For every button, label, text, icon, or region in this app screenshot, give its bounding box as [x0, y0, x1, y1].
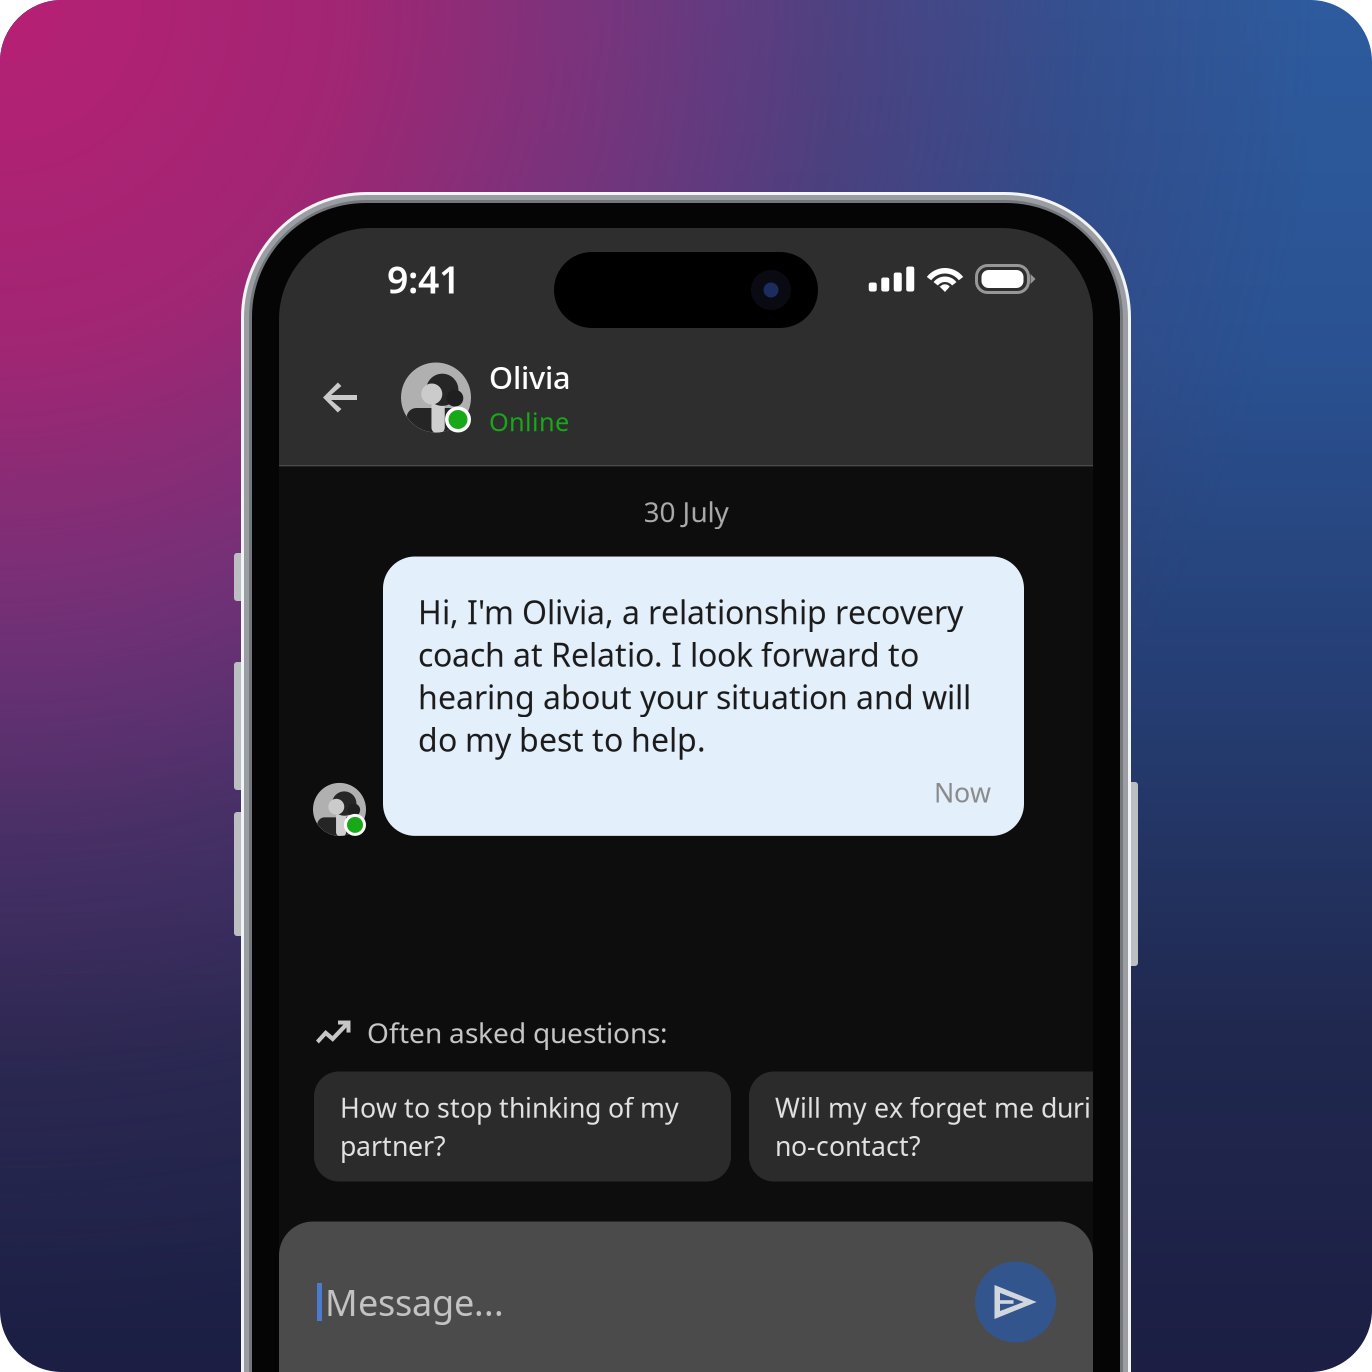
button[interactable]: Olivia: [379, 357, 571, 438]
button[interactable]: Send: [975, 1261, 1056, 1342]
staticText: Hi, I'm Olivia, a relationship recovery …: [418, 590, 971, 760]
button[interactable]: Back: [301, 358, 379, 436]
staticText: How to stop thinking of my: [340, 1090, 679, 1125]
staticText: Will my ex forget me during: [775, 1090, 1123, 1125]
button[interactable]: How to stop thinking of my: [314, 1071, 731, 1181]
staticText: 30 July: [643, 493, 728, 530]
staticText: Now: [934, 774, 991, 810]
staticText: Message...: [325, 1278, 504, 1326]
staticText: partner?: [340, 1128, 446, 1163]
staticText: Often asked questions:: [367, 1014, 668, 1051]
staticText: no-contact?: [775, 1128, 921, 1163]
button[interactable]: Will my ex forget me during: [749, 1071, 1166, 1181]
staticText: Olivia: [489, 357, 571, 397]
staticText: 9:41: [387, 254, 460, 304]
staticText: Online: [489, 404, 569, 438]
